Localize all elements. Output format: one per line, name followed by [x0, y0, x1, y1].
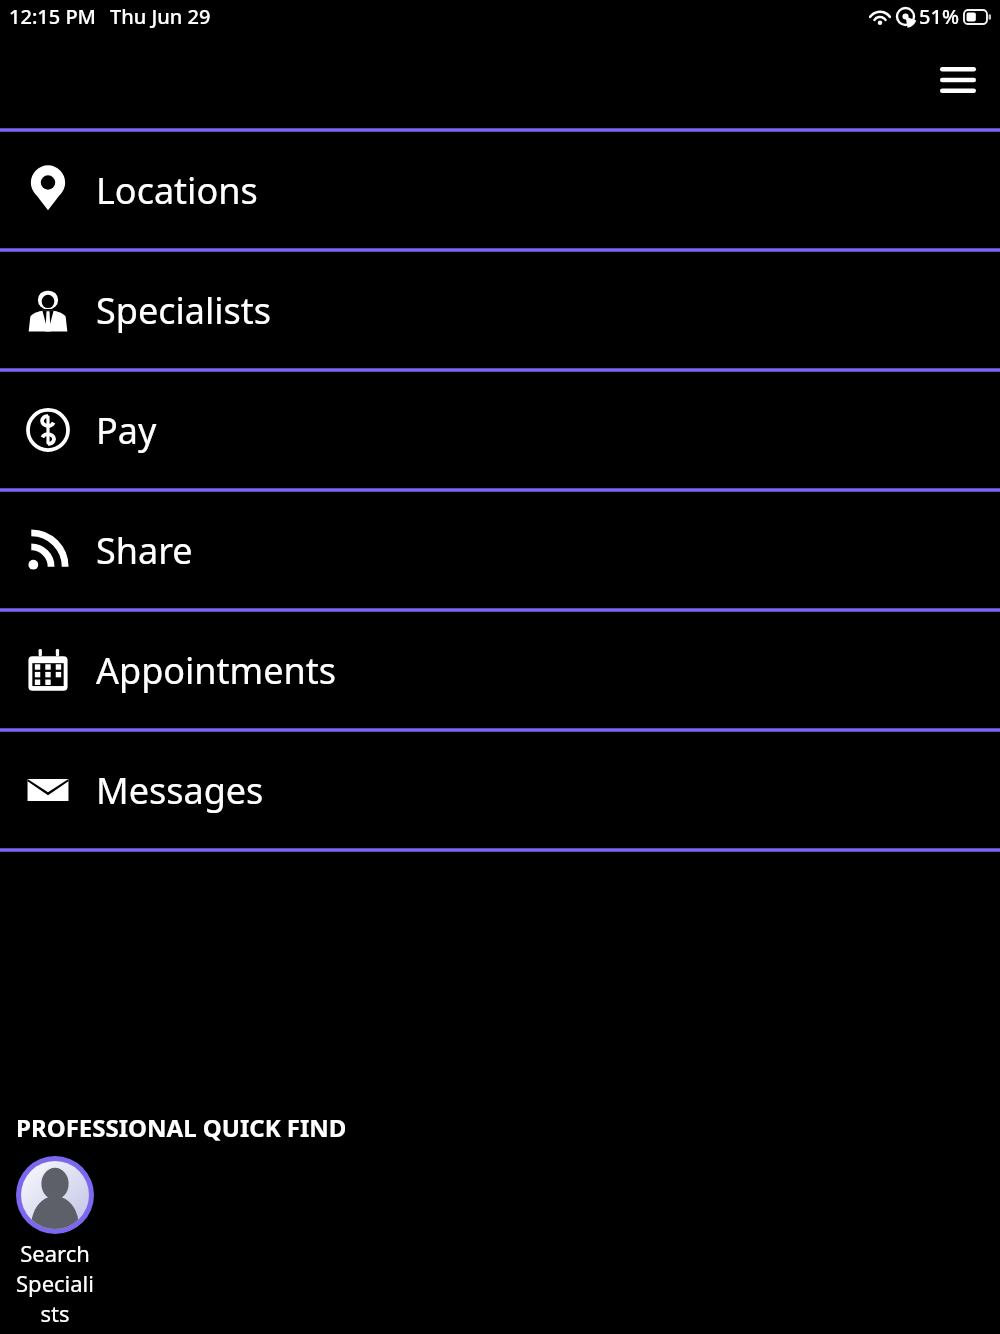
staticText: Messages [96, 766, 264, 815]
button[interactable]: Specialists [0, 252, 1000, 368]
button[interactable]: Pay [0, 372, 1000, 488]
staticText: Locations [96, 166, 258, 215]
button[interactable]: Locations [0, 132, 1000, 248]
staticText: PROFESSIONAL QUICK FIND [16, 1111, 347, 1144]
staticText: 12:15 PM [9, 3, 96, 30]
staticText: Share [96, 526, 193, 575]
staticText: Specialists [96, 286, 272, 335]
button[interactable]: Messages [0, 732, 1000, 848]
staticText: 51% [919, 3, 959, 30]
staticText: Thu Jun 29 [110, 3, 211, 30]
button[interactable]: Share [0, 492, 1000, 608]
button[interactable]: Appointments [0, 612, 1000, 728]
staticText: Specialists [16, 1268, 94, 1328]
button[interactable]: Menu [930, 52, 986, 108]
button[interactable]: Search [16, 1156, 94, 1328]
staticText: Pay [96, 406, 157, 455]
staticText: Search [20, 1238, 90, 1268]
staticText: Appointments [96, 646, 337, 695]
